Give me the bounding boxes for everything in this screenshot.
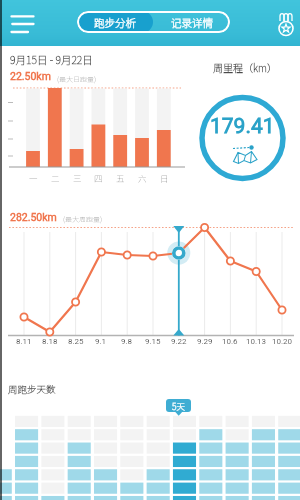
staticText: 282.50km — [10, 211, 57, 223]
staticText: 9.15 — [145, 337, 161, 346]
staticText: 周跑步天数 — [8, 382, 56, 396]
staticText: 一 — [29, 172, 38, 184]
button[interactable] — [7, 11, 39, 37]
staticText: 日 — [160, 172, 169, 184]
staticText: 9.8 — [121, 337, 133, 346]
staticText: 22.50km — [10, 70, 51, 82]
staticText: 10.6 — [222, 337, 238, 346]
staticText: 9.22 — [171, 337, 187, 346]
staticText: 四 — [94, 172, 103, 184]
staticText: 8.18 — [42, 337, 58, 346]
staticText: 五 — [116, 172, 125, 184]
staticText: 10.20 — [272, 337, 293, 346]
staticText: 8.11 — [16, 337, 32, 346]
staticText: 9.29 — [197, 337, 213, 346]
button[interactable]: 记录详情 — [153, 11, 230, 33]
staticText: 9月15日 - 9月22日 — [10, 52, 93, 67]
staticText: 179.41 — [210, 114, 275, 139]
staticText: 周里程（km） — [213, 60, 277, 74]
staticText: (最大日跑量) — [57, 74, 97, 84]
staticText: 三 — [73, 172, 82, 184]
button[interactable] — [274, 10, 298, 40]
staticText: 5天 — [172, 400, 185, 412]
staticText: 六 — [138, 172, 147, 184]
button[interactable]: 跑步分析 — [77, 11, 153, 33]
staticText: (最大周跑量) — [63, 214, 103, 224]
staticText: 记录详情 — [171, 15, 213, 30]
staticText: 10.13 — [246, 337, 267, 346]
staticText: 跑步分析 — [94, 15, 136, 30]
staticText: 9.1 — [95, 337, 107, 346]
staticText: 二 — [51, 172, 60, 184]
staticText: 8.25 — [68, 337, 84, 346]
